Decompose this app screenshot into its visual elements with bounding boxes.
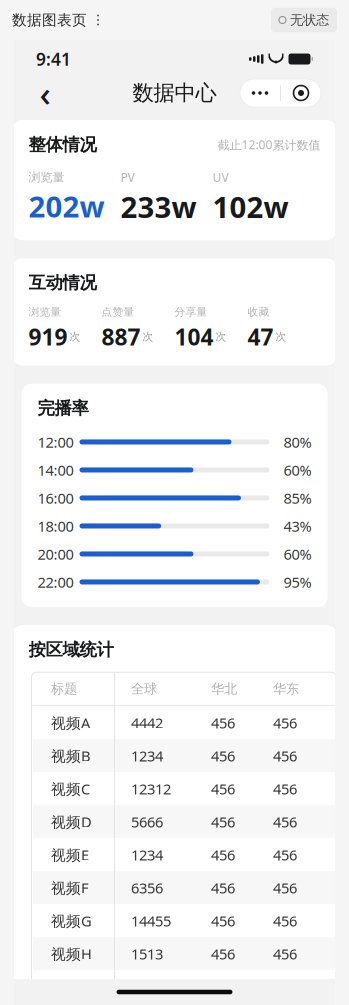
staticText: 14:00 <box>37 460 73 480</box>
staticText: 视频B <box>51 746 91 765</box>
staticText: 43% <box>283 516 311 536</box>
staticText: 456 <box>211 746 235 765</box>
staticText: 456 <box>273 911 297 930</box>
staticText: 1234 <box>131 845 163 864</box>
staticText: 视频C <box>51 779 90 798</box>
staticText: 47 <box>247 322 273 352</box>
staticText: 截止12:00累计数值 <box>217 137 320 153</box>
staticText: 次 <box>275 330 286 343</box>
staticText: 整体情况 <box>28 134 96 155</box>
staticText: ‹ <box>39 70 50 116</box>
staticText: 60% <box>283 544 311 564</box>
staticText: 华北 <box>211 681 237 697</box>
staticText: 6356 <box>131 878 163 897</box>
staticText: 887 <box>101 322 140 352</box>
staticText: 无状态 <box>290 12 329 28</box>
staticText: 456 <box>211 713 235 732</box>
staticText: 分享量 <box>174 305 207 319</box>
staticText: 456 <box>273 977 297 996</box>
button[interactable]: Close <box>281 79 321 107</box>
staticText: 95% <box>283 572 311 592</box>
staticText: 互动情况 <box>28 272 96 293</box>
staticText: 456 <box>211 779 235 798</box>
staticText: 60% <box>283 460 311 480</box>
staticText: 85% <box>283 488 311 508</box>
staticText: 22:00 <box>37 572 73 592</box>
staticText: 次 <box>215 330 226 343</box>
staticText: 9:41 <box>36 47 71 70</box>
staticText: 456 <box>273 812 297 831</box>
staticText: 次 <box>142 330 153 343</box>
staticText: 104 <box>174 322 213 352</box>
staticText: 1234 <box>131 746 163 765</box>
staticText: 233w <box>120 187 196 226</box>
staticText: 456 <box>273 944 297 963</box>
staticText: 456 <box>211 911 235 930</box>
staticText: 浏览量 <box>28 305 61 319</box>
staticText: 视频E <box>51 845 89 864</box>
staticText: 456 <box>211 944 235 963</box>
staticText: 视频A <box>51 713 90 732</box>
staticText: 按区域统计 <box>28 639 113 660</box>
staticText: 华东 <box>273 681 299 697</box>
staticText: 5666 <box>131 812 163 831</box>
staticText: 14455 <box>131 911 171 930</box>
staticText: 456 <box>211 977 235 996</box>
button[interactable]: Page menu <box>87 9 109 31</box>
staticText: 102w <box>212 187 288 226</box>
staticText: 视频H <box>51 944 92 963</box>
staticText: 456 <box>273 713 297 732</box>
staticText: 12:00 <box>37 432 73 452</box>
staticText: 456 <box>273 746 297 765</box>
staticText: 12312 <box>131 779 171 798</box>
staticText: UV <box>212 169 228 185</box>
staticText: 456 <box>211 812 235 831</box>
staticText: PV <box>120 169 134 185</box>
staticText: 456 <box>211 845 235 864</box>
staticText: 4442 <box>131 713 163 732</box>
staticText: 全球 <box>131 681 157 697</box>
button[interactable]: Back <box>28 76 62 110</box>
staticText: 浏览量 <box>28 170 64 185</box>
staticText: 1556 <box>131 977 163 996</box>
staticText: 919 <box>28 322 67 352</box>
staticText: 视频D <box>51 812 92 831</box>
staticText: 18:00 <box>37 516 73 536</box>
staticText: 次 <box>69 330 80 343</box>
staticText: 456 <box>273 878 297 897</box>
staticText: 456 <box>273 845 297 864</box>
staticText: 视频G <box>51 911 92 930</box>
staticText: 20:00 <box>37 544 73 564</box>
button[interactable]: More <box>240 79 280 107</box>
staticText: 80% <box>283 432 311 452</box>
staticText: 456 <box>211 878 235 897</box>
staticText: 202w <box>28 187 104 226</box>
staticText: 视频I <box>51 977 86 996</box>
staticText: 收藏 <box>247 305 269 319</box>
staticText: 数据图表页 <box>12 11 87 29</box>
staticText: 点赞量 <box>101 305 134 319</box>
staticText: 16:00 <box>37 488 73 508</box>
staticText: 456 <box>273 779 297 798</box>
staticText: 1513 <box>131 944 163 963</box>
staticText: 完播率 <box>37 398 88 419</box>
button[interactable]: 无状态 <box>271 8 337 32</box>
staticText: 视频F <box>51 878 89 897</box>
staticText: 数据中心 <box>132 80 216 106</box>
staticText: 标题 <box>51 681 77 697</box>
